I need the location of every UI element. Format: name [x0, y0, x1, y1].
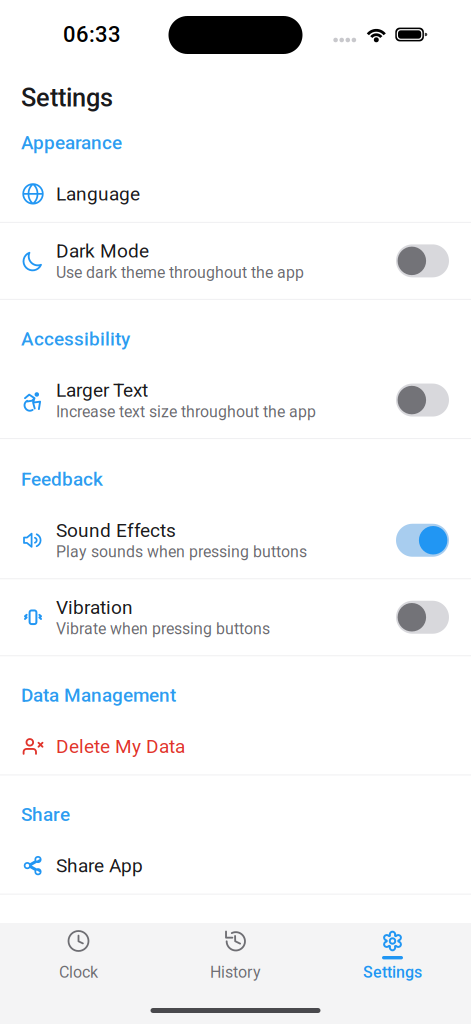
staticText: Dark Mode	[56, 240, 149, 262]
staticText: 06:33	[63, 22, 121, 47]
staticText: Language	[56, 183, 140, 205]
button[interactable]: Clock	[0, 928, 157, 981]
staticText: Vibration	[56, 596, 133, 619]
button[interactable]: Share App	[0, 838, 471, 894]
staticText: Use dark theme throughout the app	[56, 263, 304, 282]
staticText: Delete My Data	[56, 735, 185, 758]
staticText: History	[210, 963, 261, 982]
staticText: Sound Effects	[56, 519, 176, 542]
staticText: Share	[21, 803, 70, 826]
staticText: Clock	[59, 963, 98, 982]
button[interactable]: Dark Mode	[0, 223, 471, 299]
staticText: Appearance	[21, 132, 122, 154]
button[interactable]: Delete My Data	[0, 718, 471, 774]
staticText: Share App	[56, 854, 143, 877]
staticText: Settings	[363, 963, 422, 982]
button[interactable]: Sound Effects	[0, 502, 471, 578]
staticText: Data Management	[21, 684, 176, 706]
staticText: Feedback	[21, 468, 103, 490]
staticText: Larger Text	[56, 379, 148, 401]
button[interactable]: Language	[0, 166, 471, 222]
staticText: Vibrate when pressing buttons	[56, 620, 270, 638]
button[interactable]: History	[157, 928, 314, 981]
button[interactable]: Larger Text	[0, 362, 471, 438]
staticText: Increase text size throughout the app	[56, 402, 316, 421]
staticText: Play sounds when pressing buttons	[56, 543, 307, 561]
button[interactable]: Settings	[314, 928, 471, 981]
staticText: Settings	[21, 83, 113, 113]
button[interactable]: Vibration	[0, 579, 471, 655]
staticText: Accessibility	[21, 328, 130, 350]
